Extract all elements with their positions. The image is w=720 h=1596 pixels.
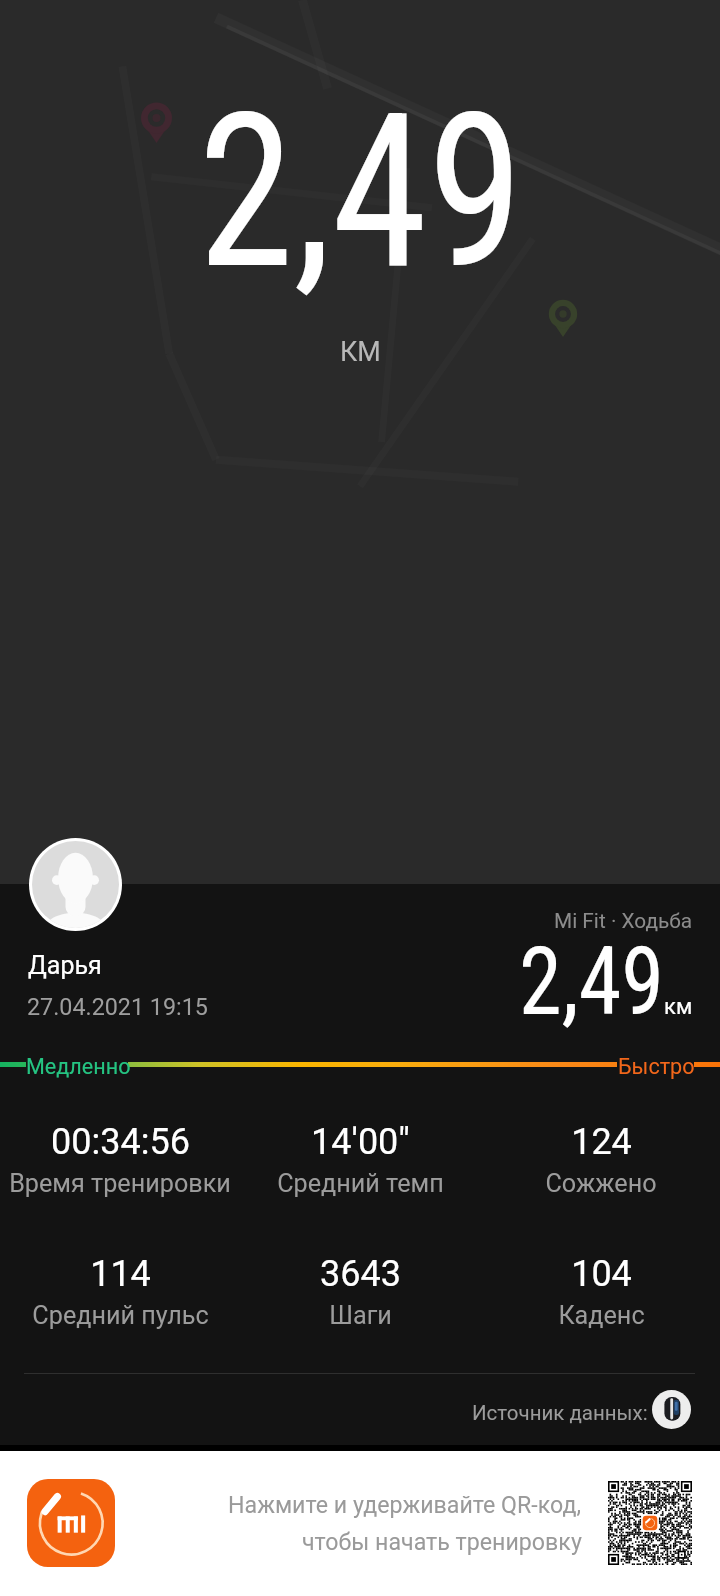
staticText: Дарья	[28, 951, 102, 980]
button[interactable]	[240, 1110, 480, 1210]
button[interactable]: QR code	[608, 1481, 692, 1565]
button[interactable]	[240, 1242, 480, 1342]
staticText: 2,49	[198, 67, 524, 317]
staticText: Каденс	[558, 1301, 645, 1331]
staticText: Быстро	[618, 1054, 695, 1079]
button[interactable]: Mi Fit app	[27, 1479, 115, 1567]
staticText: Нажмите и удерживайте QR-код,	[228, 1491, 582, 1518]
staticText: Mi Fit · Ходьба	[554, 909, 693, 933]
staticText: 2,49	[519, 926, 665, 1037]
staticText: Медленно	[26, 1054, 131, 1079]
button[interactable]	[0, 1110, 240, 1210]
staticText: 3643	[320, 1253, 401, 1295]
staticText: 14'00"	[311, 1121, 410, 1163]
staticText: Сожжено	[545, 1169, 657, 1199]
staticText: КМ	[340, 336, 381, 368]
staticText: 124	[571, 1121, 632, 1163]
staticText: 00:34:56	[51, 1121, 190, 1163]
staticText: км	[664, 994, 693, 1020]
button[interactable]	[0, 1242, 240, 1342]
button[interactable]	[481, 1242, 720, 1342]
button[interactable]: Profile photo	[29, 838, 122, 931]
staticText: Средний темп	[277, 1169, 444, 1199]
staticText: 114	[90, 1253, 151, 1295]
staticText: 27.04.2021 19:15	[27, 993, 208, 1020]
button[interactable]	[481, 1110, 720, 1210]
button[interactable]: Data source device	[652, 1390, 691, 1429]
staticText: Средний пульс	[32, 1301, 209, 1331]
staticText: Шаги	[329, 1301, 392, 1331]
staticText: 104	[571, 1253, 632, 1295]
staticText: Источник данных:	[472, 1401, 648, 1425]
staticText: чтобы начать тренировку	[302, 1528, 582, 1555]
staticText: Время тренировки	[9, 1169, 231, 1199]
